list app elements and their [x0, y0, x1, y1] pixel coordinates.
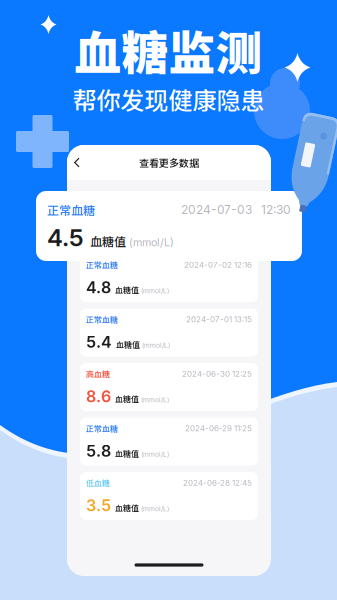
- staticText: 3.5: [86, 496, 111, 515]
- button[interactable]: 高血糖: [80, 363, 258, 411]
- staticText: 正常血糖: [86, 313, 118, 325]
- staticText: 血糖值: [84, 232, 126, 250]
- staticText: (mmol/L): [140, 341, 170, 349]
- staticText: 血糖值: [111, 393, 139, 404]
- staticText: 高血糖: [86, 368, 110, 380]
- staticText: 正常血糖: [47, 201, 95, 218]
- button[interactable]: 正常血糖: [36, 191, 302, 261]
- staticText: 血糖监测: [74, 16, 262, 84]
- staticText: (mmol/L): [139, 396, 169, 404]
- button[interactable]: 正常血糖: [80, 417, 258, 465]
- staticText: 血糖值: [112, 338, 140, 350]
- staticText: 5.8: [86, 441, 111, 460]
- button[interactable]: 低血糖: [80, 472, 258, 520]
- staticText: 4.8: [86, 278, 111, 297]
- button[interactable]: Back: [67, 150, 87, 174]
- button[interactable]: 正常血糖: [80, 308, 258, 356]
- staticText: (mmol/L): [139, 287, 169, 295]
- staticText: (mmol/L): [139, 505, 169, 513]
- staticText: 正常血糖: [86, 422, 118, 434]
- staticText: 血糖值: [111, 284, 139, 295]
- staticText: 血糖值: [111, 502, 139, 513]
- staticText: 2024-07-01 13:15: [186, 314, 252, 324]
- staticText: 2024-06-29 11:25: [185, 423, 252, 433]
- staticText: 2024-07-03 12:30: [181, 202, 291, 217]
- button[interactable]: 正常血糖: [80, 254, 258, 302]
- staticText: 8.6: [86, 387, 111, 406]
- staticText: 5.4: [86, 332, 112, 351]
- staticText: (mmol/L): [139, 450, 169, 458]
- staticText: 查看更多数据: [139, 155, 199, 170]
- staticText: 正常血糖: [86, 259, 118, 271]
- staticText: 2024-06-30 12:25: [182, 369, 252, 379]
- staticText: 4.5: [47, 223, 84, 252]
- staticText: 低血糖: [86, 477, 110, 489]
- staticText: 2024-06-28 12:45: [183, 478, 252, 488]
- staticText: 帮你发现健康隐患: [72, 82, 264, 116]
- staticText: 血糖值: [111, 447, 139, 459]
- staticText: (mmol/L): [126, 236, 174, 249]
- staticText: 2024-07-02 12:16: [184, 260, 252, 270]
